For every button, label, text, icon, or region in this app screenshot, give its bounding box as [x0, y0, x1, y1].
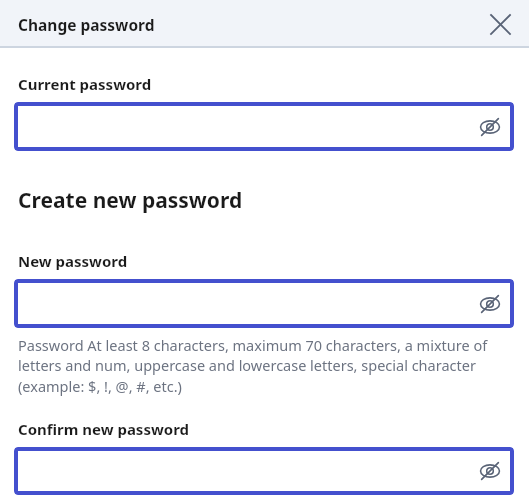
staticText: Confirm new password [18, 419, 190, 439]
staticText: Change password [18, 14, 155, 35]
button[interactable]: Show current password [477, 114, 503, 140]
staticText: Current password [18, 74, 152, 94]
button[interactable]: Close [485, 9, 515, 39]
button[interactable]: Show confirm new password [477, 458, 503, 484]
staticText: Create new password [18, 186, 243, 215]
button[interactable]: Show new password [477, 291, 503, 317]
staticText: New password [18, 251, 128, 271]
staticText: Password At least 8 characters, maximum … [18, 335, 513, 397]
button[interactable]: Show current password [14, 102, 514, 151]
button[interactable]: Show confirm new password [14, 447, 514, 495]
button[interactable]: Show new password [14, 279, 514, 328]
